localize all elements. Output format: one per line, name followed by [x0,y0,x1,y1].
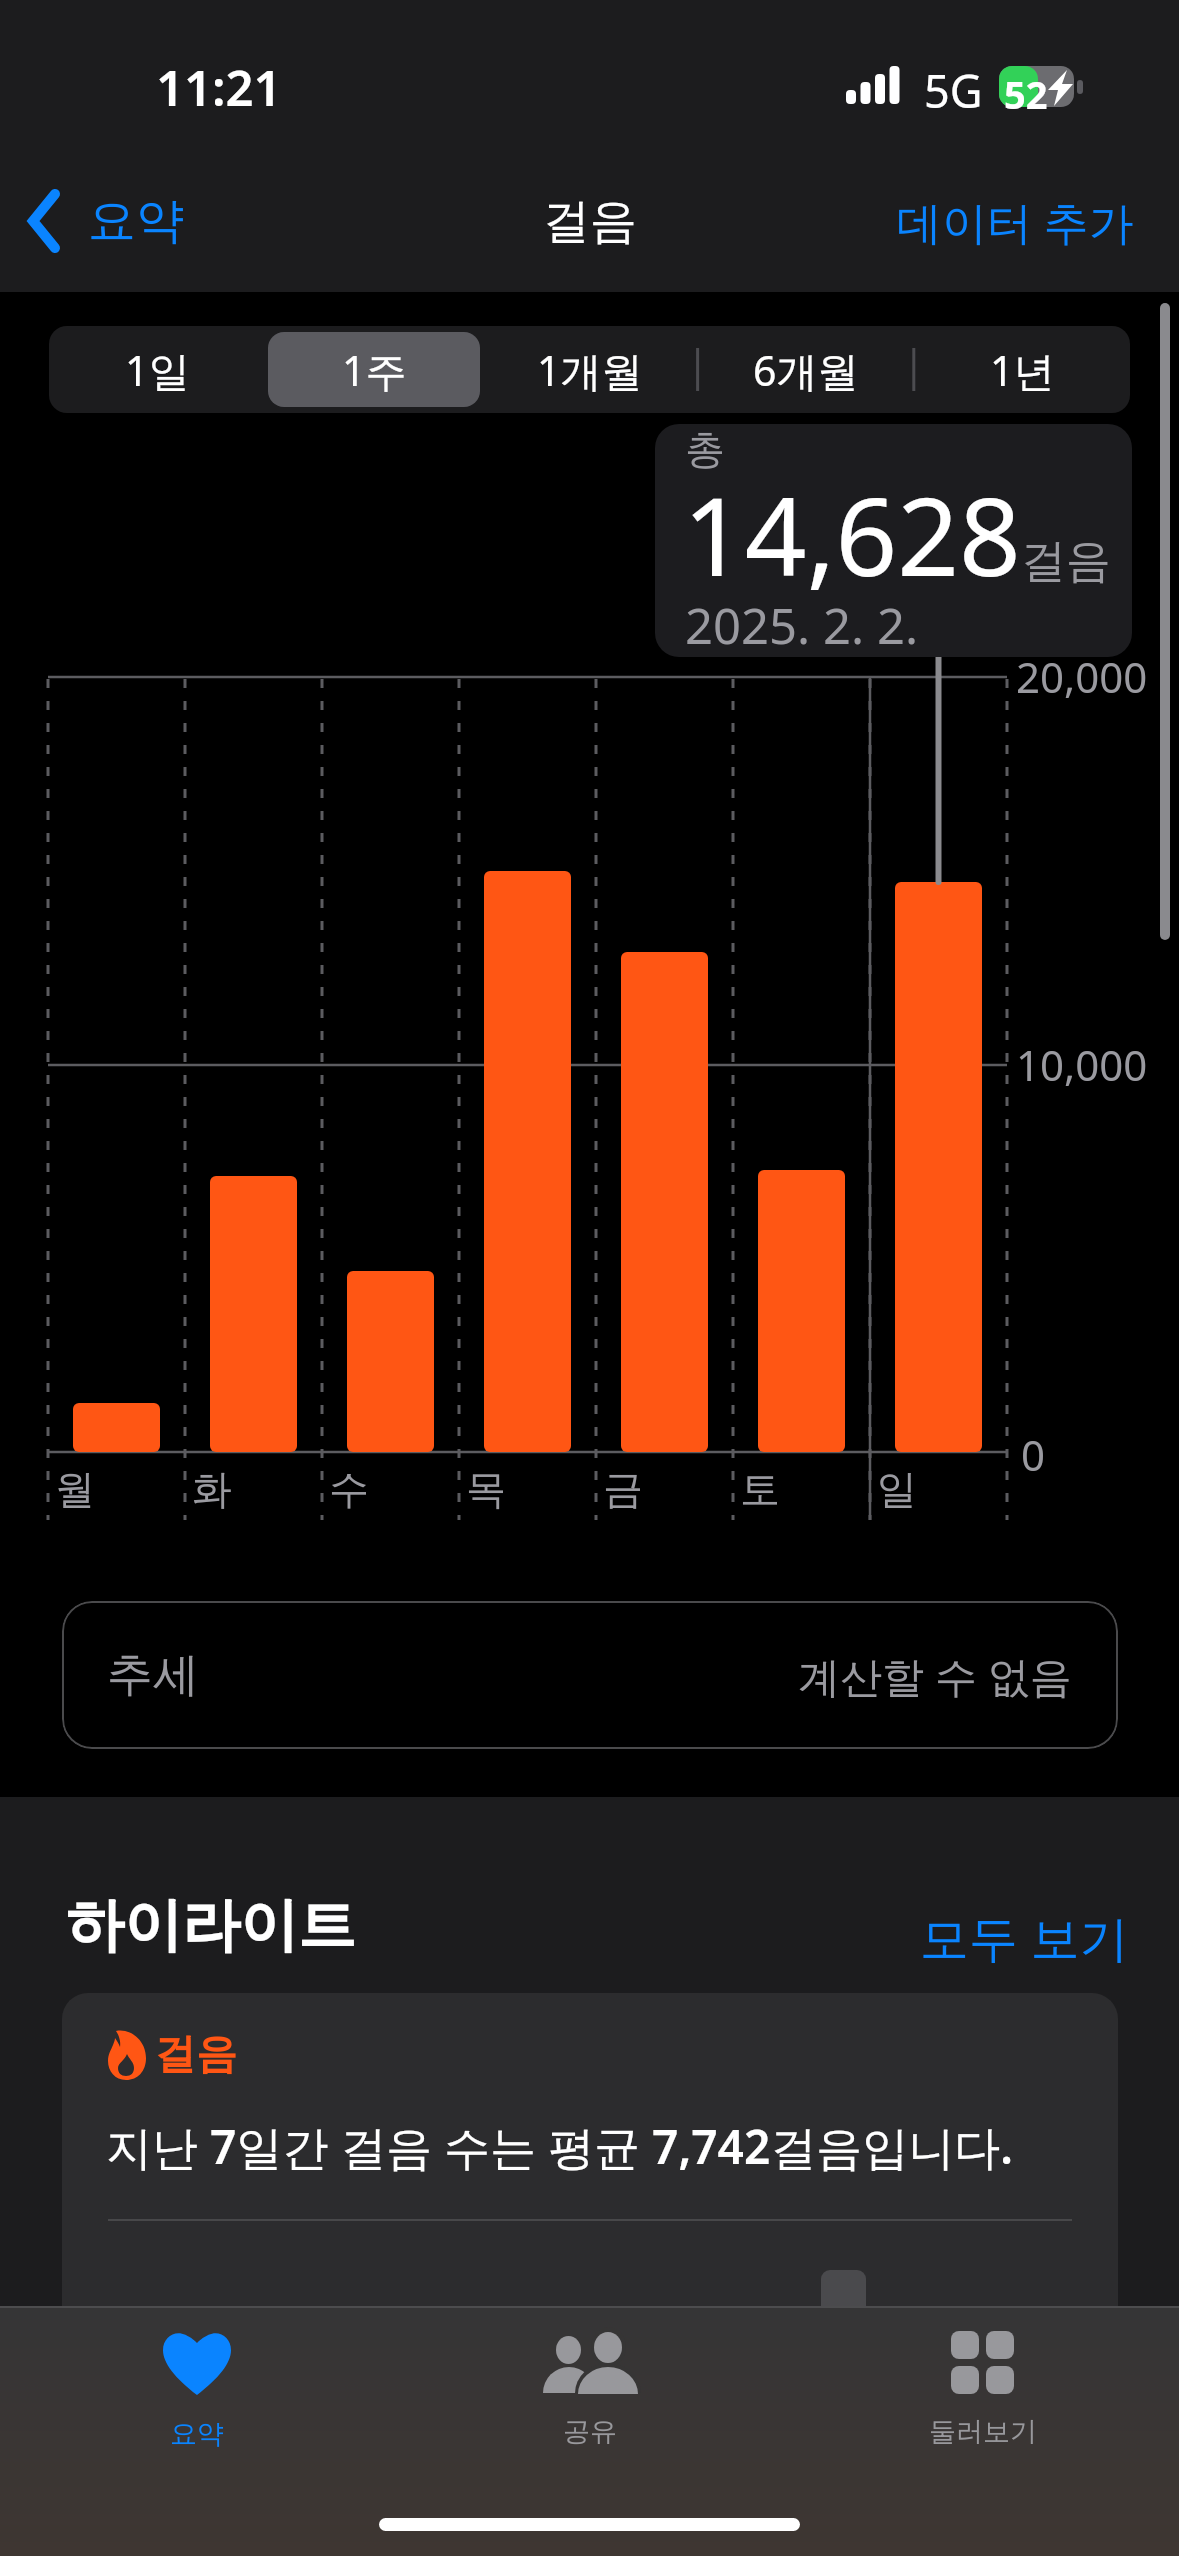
staticText: 걸음 [1021,533,1111,590]
staticText: 목 [466,1464,506,1514]
button[interactable]: 요약 [0,150,208,292]
staticText: 1주 [342,342,407,398]
staticText: 총 [685,424,725,474]
staticText: 52 [1004,68,1048,120]
staticText: 계산할 수 없음 [798,1647,1072,1704]
staticText: 지난 7일간 걸음 수는 평균 7,742걸음입니다. [106,2115,1013,2178]
staticText: 14,628 [683,461,1021,608]
staticText: 11:21 [156,54,282,121]
staticText: 6개월 [753,342,859,398]
button[interactable]: 6개월 [700,332,912,407]
staticText: 모두 보기 [920,1904,1129,1971]
staticText: 공유 [563,2415,617,2449]
button[interactable]: Sharing [393,2306,786,2456]
button[interactable]: 걸음 [62,1993,1118,2306]
button[interactable]: Browse [786,2306,1179,2456]
staticText: 토 [740,1464,780,1514]
button[interactable]: 1일 [51,332,264,407]
staticText: 수 [329,1464,369,1514]
staticText: 추세 [107,1646,199,1704]
staticText: 둘러보기 [929,2415,1037,2449]
button[interactable]: 모두 보기 [910,1896,1139,1979]
staticText: 요약 [170,2417,224,2451]
staticText: 10,000 [1016,1036,1148,1093]
staticText: 걸음 [155,2029,237,2081]
staticText: 일 [877,1464,917,1514]
button[interactable]: 추세 [62,1601,1118,1749]
staticText: 1년 [990,342,1055,398]
staticText: 5G [924,60,983,121]
staticText: 1일 [125,342,190,398]
staticText: 금 [603,1464,643,1514]
staticText: 하이라이트 [66,1889,356,1962]
staticText: 걸음 [543,192,637,251]
staticText: 2025. 2. 2. [685,592,919,657]
button[interactable]: 1주 [268,332,480,407]
staticText: 0 [1021,1426,1046,1483]
staticText: 요약 [88,191,184,251]
staticText: 화 [192,1464,232,1514]
button[interactable]: 1개월 [484,332,696,407]
button[interactable]: Summary [0,2306,393,2456]
staticText: 데이터 추가 [897,191,1134,252]
staticText: 월 [55,1464,95,1514]
staticText: 20,000 [1016,648,1148,705]
button[interactable]: 데이터 추가 [857,150,1179,292]
button[interactable]: 1년 [916,332,1128,407]
staticText: 1개월 [537,342,643,398]
